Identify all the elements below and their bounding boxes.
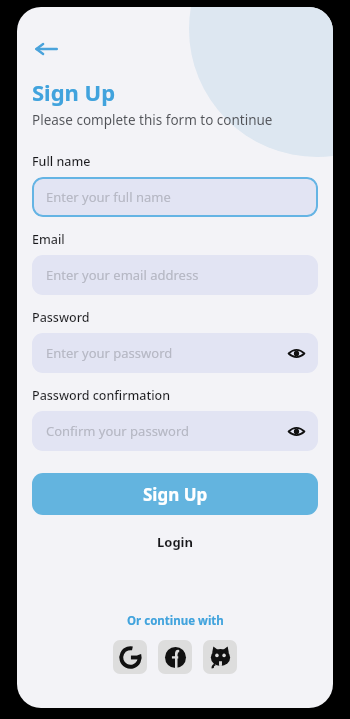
button[interactable]: Sign up with Google (113, 640, 147, 674)
button[interactable]: Back (26, 29, 66, 69)
staticText: Full name (32, 153, 91, 170)
staticText: Login (157, 533, 193, 551)
staticText: Password confirmation (32, 387, 171, 404)
staticText: Enter your email address (46, 266, 199, 284)
staticText: Sign Up (32, 77, 116, 107)
staticText: Please complete this form to continue (32, 111, 273, 129)
staticText: Email (32, 231, 65, 248)
button[interactable]: Enter your full name (32, 177, 318, 217)
button[interactable]: Show password (280, 415, 312, 447)
button[interactable]: Sign Up (32, 473, 318, 515)
button[interactable]: Login (145, 529, 205, 555)
button[interactable]: Sign up with Facebook (158, 640, 192, 674)
button[interactable]: Show password (280, 337, 312, 369)
button[interactable]: Enter your password (32, 333, 318, 373)
button[interactable]: Enter your email address (32, 255, 318, 295)
staticText: Confirm your password (46, 422, 190, 440)
staticText: Enter your password (46, 344, 173, 362)
button[interactable]: Sign up with GitHub (203, 640, 237, 674)
button[interactable]: Confirm your password (32, 411, 318, 451)
staticText: Enter your full name (46, 188, 171, 206)
staticText: Password (32, 309, 90, 326)
staticText: Or continue with (127, 613, 224, 629)
staticText: Sign Up (143, 483, 208, 506)
